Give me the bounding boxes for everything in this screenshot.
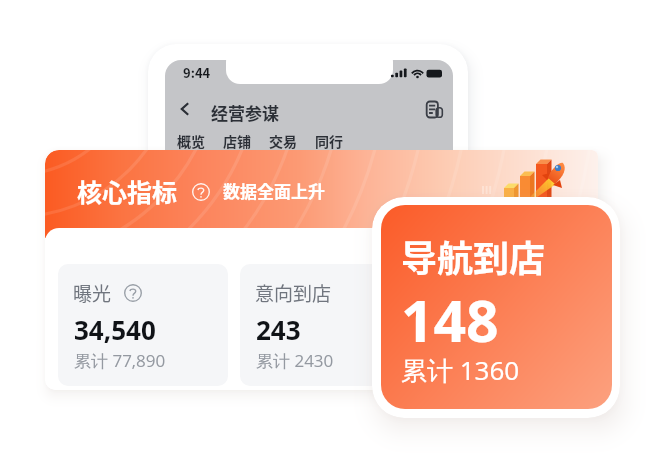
staticText: 交易 [269,131,297,151]
other: Report [426,101,443,118]
button[interactable]: 概览 [177,131,223,151]
button[interactable]: 同行 [315,131,361,151]
other: Back [177,101,193,117]
button[interactable]: 导航到店 [422,264,592,386]
staticText: 148 [401,281,499,359]
staticText: 经营参谋 [211,100,279,125]
staticText: 曝光 [73,279,112,307]
staticText: 累计 1360 [438,349,516,372]
staticText: 累计 1360 [401,352,520,388]
staticText: 9:44 [183,63,211,82]
staticText: 意向到店 [255,279,332,307]
staticText: 概览 [177,131,205,151]
button[interactable]: 曝光 [58,264,228,386]
staticText: 34,540 [74,312,156,347]
button[interactable]: 交易 [269,131,315,151]
staticText: 核心指标 [77,173,178,209]
staticText: 243 [256,312,301,347]
staticText: 导航到店 [437,279,514,307]
staticText: 累计 2430 [256,349,334,372]
button[interactable]: 导航到店 [381,205,612,409]
staticText: 店铺 [223,131,251,151]
staticText: 导航到店 [401,230,546,282]
staticText: 同行 [315,131,343,151]
staticText: 148 [438,312,483,347]
button[interactable]: 店铺 [223,131,269,151]
staticText: 数据全面上升 [223,178,325,203]
staticText: 累计 77,890 [74,349,166,372]
button[interactable]: 意向到店 [240,264,410,386]
